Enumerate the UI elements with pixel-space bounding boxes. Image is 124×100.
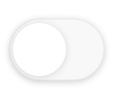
button[interactable]: Toggle xyxy=(10,19,104,80)
